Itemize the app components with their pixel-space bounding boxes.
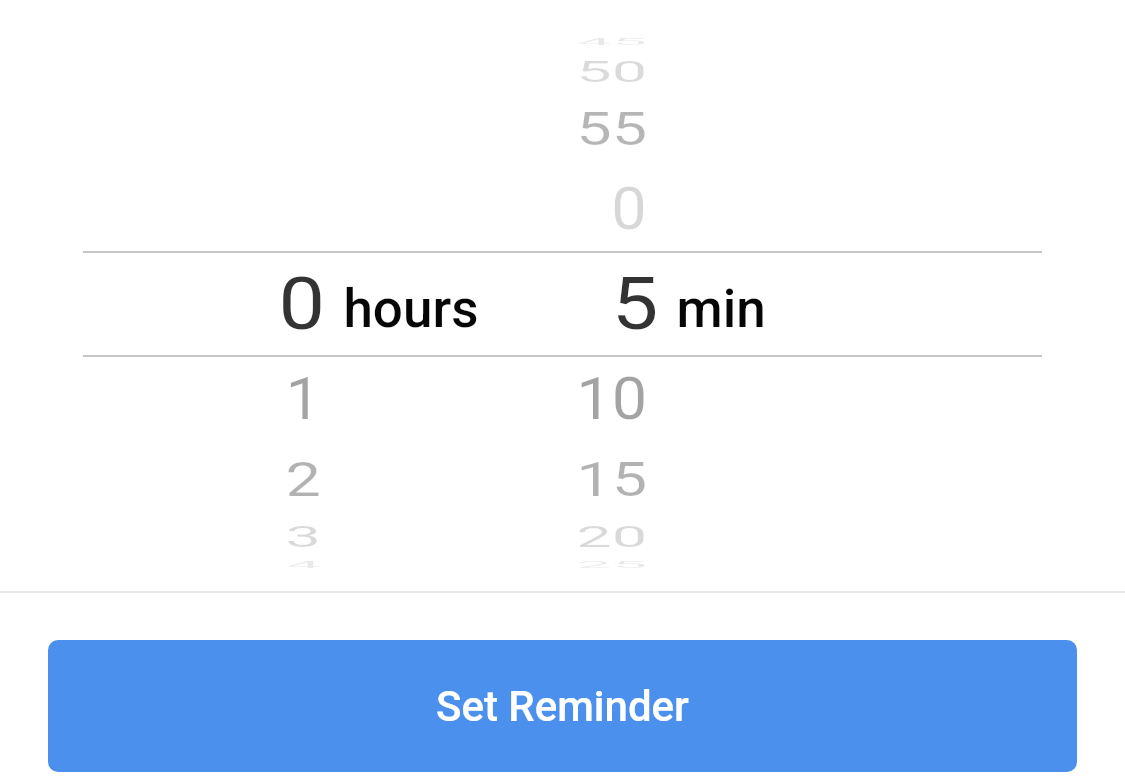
staticText: Set Reminder — [436, 682, 689, 731]
button[interactable]: Set Reminder — [48, 640, 1077, 772]
button[interactable]: Minutes: 5 — [470, 0, 1125, 591]
button[interactable]: Hours: 0 — [0, 0, 470, 591]
